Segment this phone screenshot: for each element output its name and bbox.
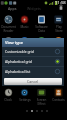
button[interactable] — [0, 36, 16, 46]
staticText: Clock — [4, 98, 12, 102]
button[interactable]: Customizable grid — [2, 47, 64, 56]
staticText: Widgets — [27, 6, 41, 11]
staticText: View type — [5, 40, 23, 45]
staticText: Contacts — [52, 98, 65, 102]
staticText: Customizable grid — [5, 49, 55, 54]
staticText: Cancel — [27, 79, 39, 84]
button[interactable]: Widgets — [21, 4, 46, 12]
button[interactable]: Software Data — [33, 15, 50, 33]
button[interactable]: Shop — [55, 4, 67, 12]
button[interactable]: Play Store — [50, 15, 67, 33]
staticText: Settings — [19, 98, 31, 102]
button[interactable]: Settings — [16, 88, 33, 102]
staticText: Apps — [8, 6, 17, 11]
button[interactable] — [16, 36, 33, 46]
staticText: Music — [20, 25, 29, 29]
button[interactable]: Screen Effect — [33, 88, 50, 106]
staticText: 11:58 — [55, 0, 66, 6]
button[interactable]: Music — [16, 15, 33, 29]
button[interactable] — [50, 36, 67, 46]
button[interactable]: Contacts — [50, 88, 67, 102]
staticText: Play Store — [55, 25, 63, 33]
staticText: Document Reader — [1, 25, 16, 33]
staticText: Alphabetical list — [5, 69, 55, 74]
button[interactable] — [33, 36, 50, 46]
button[interactable]: Cancel — [4, 78, 62, 85]
button[interactable]: Apps — [0, 4, 25, 12]
staticText: Screen Effect — [33, 98, 50, 106]
staticText: Software Data — [35, 25, 48, 33]
button[interactable]: Alphabetical list — [2, 67, 64, 76]
staticText: Alphabetical grid — [5, 59, 55, 64]
button[interactable]: Document Reader — [0, 15, 16, 33]
button[interactable]: Alphabetical grid — [2, 57, 64, 66]
button[interactable]: Clock — [0, 88, 16, 102]
